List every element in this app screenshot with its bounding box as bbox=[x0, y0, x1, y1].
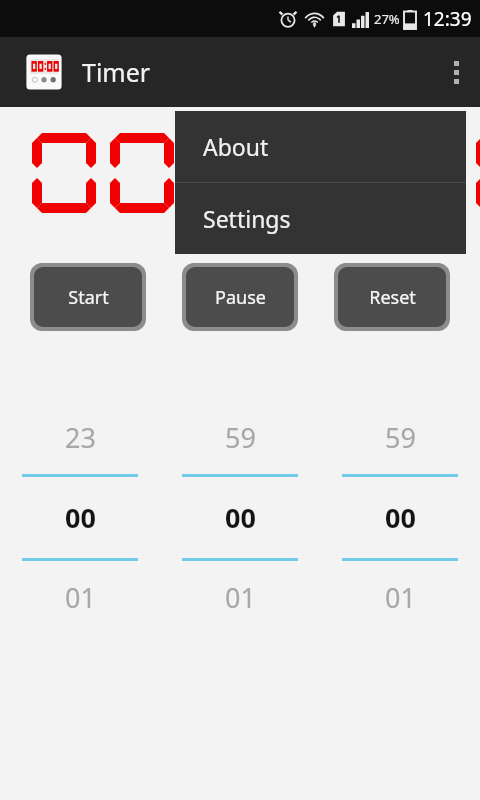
staticText: Reset bbox=[369, 285, 416, 310]
staticText: Pause bbox=[215, 285, 266, 310]
staticText: 00 bbox=[385, 499, 416, 536]
button[interactable]: 23 bbox=[0, 399, 160, 639]
staticText: 12:39 bbox=[423, 6, 472, 32]
staticText: 01 bbox=[385, 579, 416, 616]
button[interactable]: More options bbox=[432, 37, 480, 107]
button[interactable]: Pause bbox=[186, 267, 294, 327]
staticText: 00 bbox=[65, 499, 96, 536]
staticText: 01 bbox=[225, 579, 256, 616]
staticText: Start bbox=[68, 285, 109, 310]
staticText: About bbox=[203, 131, 269, 162]
staticText: Settings bbox=[203, 203, 291, 234]
button[interactable]: 59 bbox=[160, 399, 320, 639]
staticText: 59 bbox=[225, 419, 256, 456]
staticText: 01 bbox=[65, 579, 96, 616]
staticText: 00 bbox=[225, 499, 256, 536]
staticText: Timer bbox=[82, 55, 151, 89]
button[interactable]: About bbox=[175, 111, 466, 182]
button[interactable]: Settings bbox=[175, 183, 466, 254]
staticText: 27% bbox=[374, 10, 400, 28]
button[interactable]: 59 bbox=[320, 399, 480, 639]
staticText: 59 bbox=[385, 419, 416, 456]
button[interactable]: Reset bbox=[338, 267, 446, 327]
staticText: 23 bbox=[65, 419, 96, 456]
button[interactable]: Start bbox=[34, 267, 142, 327]
